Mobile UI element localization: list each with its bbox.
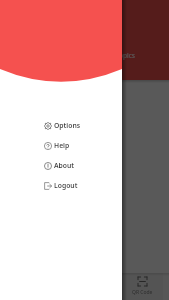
staticText: Logout (54, 181, 78, 190)
button[interactable]: Options (0, 116, 122, 136)
staticText: Trending Topics (87, 51, 135, 60)
button[interactable]: Logout (0, 176, 122, 196)
button[interactable]: About (0, 156, 122, 176)
staticText: Help (54, 141, 70, 150)
button[interactable]: Help (0, 136, 122, 156)
button[interactable]: QR Code (122, 273, 163, 300)
staticText: About (54, 161, 75, 170)
staticText: Options (54, 121, 81, 130)
staticText: QR Code (132, 289, 153, 296)
